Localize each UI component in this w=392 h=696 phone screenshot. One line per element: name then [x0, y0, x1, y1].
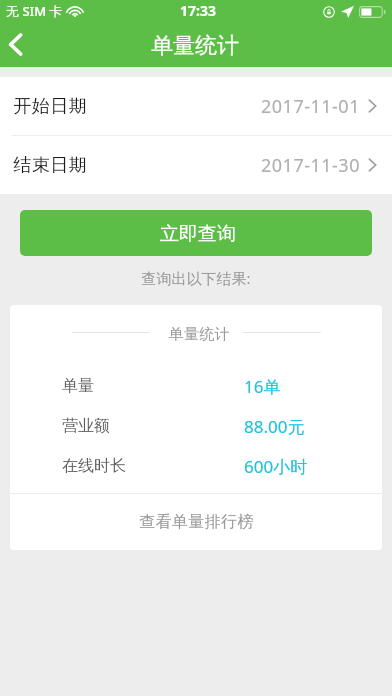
staticText: 600小时: [244, 455, 308, 478]
staticText: 17:33: [180, 1, 216, 20]
staticText: 在线时长: [62, 456, 126, 476]
staticText: 营业额: [62, 416, 110, 436]
staticText: 单量统计: [151, 32, 239, 60]
staticText: 2017-11-30: [261, 153, 360, 178]
staticText: 查询出以下结果:: [0, 268, 392, 288]
button[interactable]: 开始日期: [0, 77, 392, 135]
staticText: 结束日期: [13, 154, 87, 177]
staticText: 立即查询: [160, 222, 236, 246]
staticText: 16单: [244, 375, 281, 398]
staticText: 查看单量排行榜: [139, 512, 254, 532]
button[interactable]: Back: [0, 22, 38, 67]
staticText: 88.00元: [244, 415, 305, 438]
button[interactable]: 结束日期: [0, 136, 392, 194]
staticText: 2017-11-01: [261, 94, 360, 119]
staticText: 开始日期: [13, 95, 87, 118]
staticText: 无 SIM 卡: [6, 2, 63, 20]
staticText: 单量统计: [168, 325, 230, 344]
button[interactable]: 立即查询: [20, 210, 372, 256]
button[interactable]: 查看单量排行榜: [10, 494, 382, 550]
staticText: 单量: [62, 376, 94, 396]
